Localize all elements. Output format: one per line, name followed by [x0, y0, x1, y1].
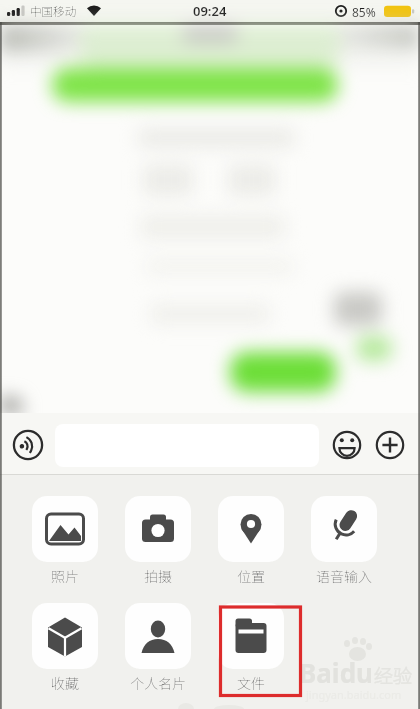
- button[interactable]: 拍摄: [111, 496, 204, 586]
- button[interactable]: 语音输入: [297, 496, 390, 586]
- staticText: 位置: [237, 566, 265, 586]
- staticText: 语音输入: [316, 566, 372, 586]
- button[interactable]: 照片: [18, 496, 111, 586]
- staticText: 拍摄: [144, 566, 172, 586]
- button[interactable]: 位置: [204, 496, 297, 586]
- button[interactable]: 文件: [204, 603, 297, 693]
- staticText: 中国移动: [30, 3, 76, 20]
- staticText: 照片: [51, 566, 79, 586]
- button[interactable]: [330, 428, 364, 462]
- staticText: 个人名片: [130, 673, 186, 693]
- button[interactable]: [373, 428, 407, 462]
- button[interactable]: 个人名片: [111, 603, 204, 693]
- staticText: Baidu: [299, 655, 373, 690]
- button[interactable]: [11, 428, 45, 462]
- staticText: 文件: [237, 673, 265, 693]
- button[interactable]: 收藏: [18, 603, 111, 693]
- staticText: 经验: [374, 661, 413, 689]
- staticText: 09:24: [193, 2, 227, 20]
- staticText: 85%: [352, 4, 376, 20]
- staticText: 收藏: [51, 673, 79, 693]
